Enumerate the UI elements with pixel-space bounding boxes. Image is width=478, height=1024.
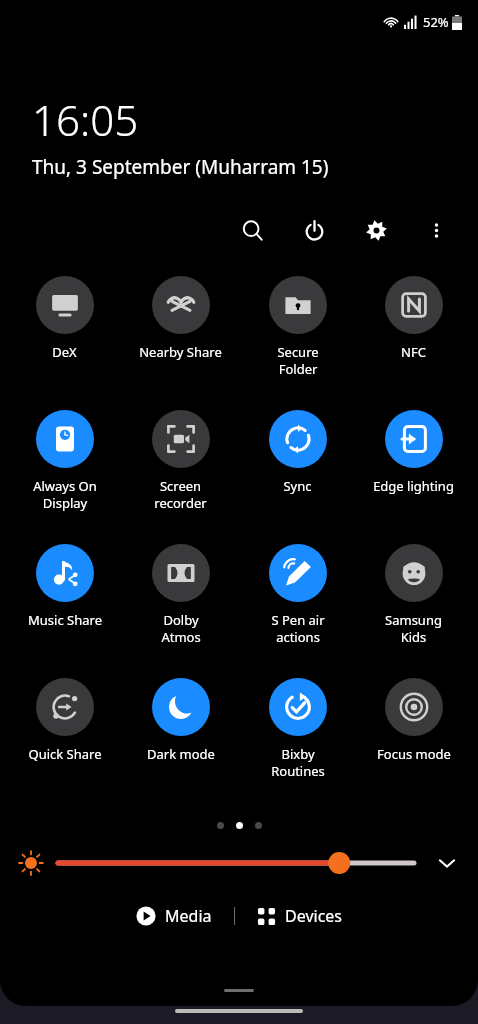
staticText: S Pen air actions [271,611,325,646]
staticText: Samsung Kids [385,611,442,646]
button[interactable]: Search [232,210,272,250]
button[interactable]: Media [128,901,220,931]
button[interactable]: Power [294,210,334,250]
staticText: Secure Folder [277,343,319,378]
button[interactable]: Dark mode [128,678,233,812]
staticText: Music Share [28,611,102,629]
staticText: Thu, 3 September (Muharram 15) [32,154,329,180]
staticText: 16:05 [32,91,139,148]
button[interactable]: Quick Share [12,678,117,812]
button[interactable]: Focus mode [361,678,466,812]
button[interactable]: Screen recorder [128,410,233,544]
button[interactable]: Always On Display [12,410,117,544]
staticText: Sync [283,477,312,495]
button[interactable]: Secure Folder [245,276,350,410]
staticText: Dark mode [147,745,215,763]
button[interactable]: Edge lighting [361,410,466,544]
button[interactable]: More options [416,210,456,250]
button[interactable]: Bixby Routines [245,678,350,812]
staticText: NFC [401,343,426,361]
button[interactable]: Dolby Atmos [128,544,233,678]
button[interactable]: Devices [249,901,351,931]
staticText: Always On Display [33,477,97,512]
staticText: Devices [285,905,343,927]
button[interactable]: S Pen air actions [245,544,350,678]
staticText: Dolby Atmos [161,611,201,646]
button[interactable]: DeX [12,276,117,410]
button[interactable]: Settings [356,210,396,250]
staticText: Quick Share [28,745,102,763]
button[interactable]: Sync [245,410,350,544]
staticText: Edge lighting [373,477,454,495]
staticText: Media [165,905,212,927]
staticText: DeX [52,343,77,361]
button[interactable] [58,850,414,876]
staticText: Bixby Routines [271,745,325,780]
staticText: 52% [423,13,449,31]
button[interactable]: Samsung Kids [361,544,466,678]
staticText: Nearby Share [139,343,222,361]
button[interactable]: Expand [430,846,464,880]
button[interactable]: Music Share [12,544,117,678]
staticText: Screen recorder [154,477,207,512]
button[interactable]: NFC [361,276,466,410]
button[interactable]: Nearby Share [128,276,233,410]
staticText: Focus mode [377,745,451,763]
